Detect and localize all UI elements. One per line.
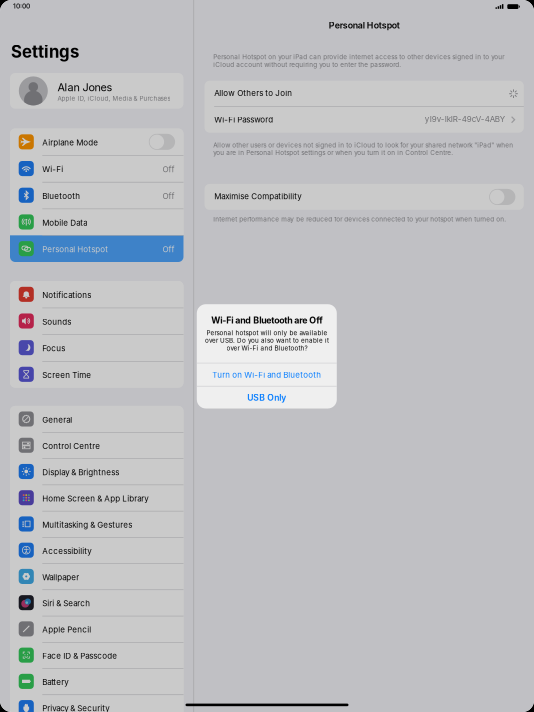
- staticText: Display & Brightness: [42, 467, 119, 477]
- staticText: Wi-Fi Password: [214, 115, 273, 124]
- staticText: Mobile Data: [42, 218, 87, 228]
- staticText: Settings: [11, 41, 79, 62]
- staticText: Off: [163, 191, 175, 201]
- button[interactable]: Screen Time: [10, 361, 183, 388]
- staticText: Bluetooth: [42, 191, 80, 201]
- button[interactable]: Airplane Mode: [10, 128, 183, 155]
- button[interactable]: Wi-Fi: [10, 155, 183, 182]
- button[interactable]: Allow Others to Join: [204, 81, 524, 107]
- staticText: Control Centre: [42, 441, 100, 451]
- button[interactable]: Turn on Wi-Fi and Bluetooth: [197, 363, 337, 386]
- staticText: Screen Time: [42, 370, 91, 380]
- button[interactable]: Wi-Fi Password: [204, 107, 524, 133]
- staticText: Multitasking & Gestures: [42, 520, 132, 530]
- staticText: Allow Others to Join: [214, 88, 292, 98]
- staticText: Battery: [42, 677, 68, 687]
- staticText: Apple ID, iCloud, Media & Purchases: [57, 95, 170, 102]
- button[interactable]: Face ID & Passcode: [10, 642, 183, 668]
- button[interactable]: Wallpaper: [10, 563, 183, 589]
- button[interactable]: Accessibility: [10, 537, 183, 563]
- staticText: Maximise Compatibility: [214, 191, 301, 201]
- button[interactable]: Home Screen & App Library: [10, 485, 183, 511]
- button[interactable]: Personal Hotspot: [10, 235, 183, 262]
- staticText: Sounds: [42, 317, 71, 327]
- staticText: General: [42, 415, 72, 425]
- staticText: Wi-Fi: [42, 164, 63, 174]
- staticText: Allow other users or devices not signed …: [213, 141, 513, 157]
- staticText: 10:00: [13, 2, 30, 10]
- button[interactable]: Notifications: [10, 281, 183, 308]
- staticText: Personal Hotspot: [42, 245, 108, 254]
- button[interactable]: Maximise Compatibility: [204, 184, 524, 210]
- button[interactable]: Display & Brightness: [10, 458, 183, 485]
- button[interactable]: Privacy & Security: [10, 694, 183, 712]
- button[interactable]: Control Centre: [10, 432, 183, 458]
- button[interactable]: Bluetooth: [10, 182, 183, 209]
- button[interactable]: Apple Pencil: [10, 616, 183, 642]
- button[interactable]: Multitasking & Gestures: [10, 511, 183, 537]
- staticText: Home Screen & App Library: [42, 494, 148, 503]
- staticText: Wallpaper: [42, 572, 79, 582]
- staticText: yI9v-IkIR-49cV-4ABY: [425, 114, 505, 124]
- staticText: Airplane Mode: [42, 138, 98, 147]
- button[interactable]: Sounds: [10, 308, 183, 334]
- button[interactable]: General: [10, 406, 183, 432]
- staticText: Off: [163, 245, 175, 254]
- staticText: USB Only: [247, 392, 286, 403]
- button[interactable]: Focus: [10, 334, 183, 361]
- staticText: Internet performance may be reduced for …: [213, 215, 506, 223]
- staticText: Focus: [42, 344, 65, 353]
- staticText: Personal hotspot will only be available …: [205, 329, 329, 352]
- staticText: Alan Jones: [57, 81, 112, 94]
- button[interactable]: Mobile Data: [10, 209, 183, 235]
- staticText: Apple Pencil: [42, 625, 91, 635]
- button[interactable]: Siri & Search: [10, 589, 183, 616]
- staticText: Privacy & Security: [42, 704, 109, 712]
- staticText: Notifications: [42, 290, 91, 300]
- button[interactable]: Battery: [10, 668, 183, 694]
- staticText: Turn on Wi-Fi and Bluetooth: [212, 370, 321, 380]
- staticText: Face ID & Passcode: [42, 651, 117, 661]
- staticText: Personal Hotspot on your iPad can provid…: [213, 53, 504, 68]
- staticText: Accessibility: [42, 546, 91, 556]
- button[interactable]: Alan Jones: [10, 73, 183, 109]
- staticText: Off: [163, 164, 175, 174]
- staticText: Wi-Fi and Bluetooth are Off: [211, 315, 322, 326]
- staticText: Personal Hotspot: [329, 20, 400, 31]
- button[interactable]: USB Only: [197, 386, 337, 409]
- staticText: Siri & Search: [42, 599, 90, 608]
